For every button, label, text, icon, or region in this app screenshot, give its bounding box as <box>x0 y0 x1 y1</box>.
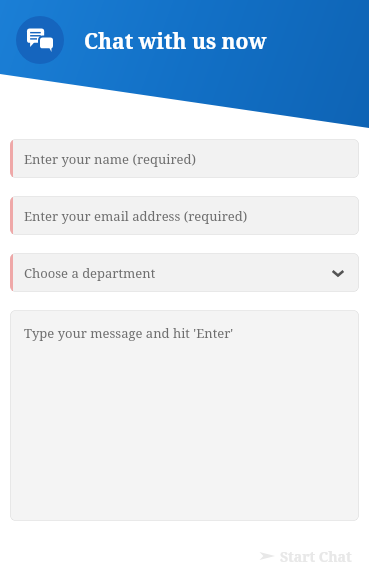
staticText: Chat with us now <box>84 27 267 56</box>
button[interactable]: Enter your name (required) <box>10 139 359 178</box>
button[interactable]: Chat <box>16 16 64 64</box>
staticText: Type your message and hit 'Enter' <box>24 324 234 342</box>
button[interactable]: Choose a department <box>10 253 359 292</box>
staticText: Enter your email address (required) <box>24 207 248 225</box>
button[interactable]: Send <box>258 544 352 568</box>
staticText: Enter your name (required) <box>24 150 196 168</box>
button[interactable]: Enter your email address (required) <box>10 196 359 235</box>
other: Send <box>258 547 276 565</box>
other: Expand department list <box>331 266 345 280</box>
staticText: Start Chat <box>280 547 352 566</box>
button[interactable]: Type your message and hit 'Enter' <box>10 310 359 521</box>
staticText: Choose a department <box>24 264 331 282</box>
